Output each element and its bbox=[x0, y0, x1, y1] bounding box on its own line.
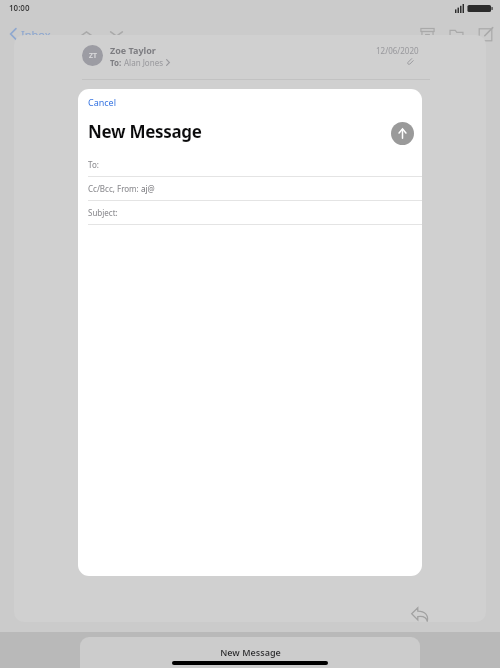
button[interactable]: Inbox bbox=[10, 16, 51, 52]
staticText: Cc/Bcc, From: bbox=[88, 183, 141, 194]
button[interactable]: Move to folder bbox=[438, 16, 474, 52]
staticText: To: bbox=[88, 159, 99, 170]
button[interactable]: Reply bbox=[402, 597, 436, 622]
button[interactable]: To: bbox=[110, 57, 170, 68]
staticText: 10:00 bbox=[9, 2, 30, 13]
staticText: ZT bbox=[89, 51, 97, 61]
staticText: New Message bbox=[220, 646, 281, 658]
button[interactable]: Cc/Bcc, From: bbox=[78, 177, 422, 201]
staticText: To: bbox=[110, 57, 124, 68]
staticText: Subject: bbox=[88, 207, 118, 218]
button[interactable]: To: bbox=[78, 153, 422, 177]
button[interactable]: Send bbox=[391, 122, 414, 145]
button[interactable]: Cancel bbox=[88, 96, 117, 108]
staticText: Alan Jones bbox=[124, 57, 163, 68]
button[interactable]: Next message bbox=[98, 16, 134, 52]
staticText: Cancel bbox=[88, 96, 117, 108]
button[interactable]: New Message bbox=[80, 637, 420, 668]
staticText: 12/06/2020 bbox=[376, 45, 419, 56]
staticText: New Message bbox=[88, 120, 202, 143]
staticText: aj@ bbox=[141, 183, 155, 194]
staticText: Zoe Taylor bbox=[110, 44, 156, 56]
button[interactable]: Previous message bbox=[68, 16, 104, 52]
button[interactable]: Archive bbox=[409, 16, 445, 52]
button[interactable]: Compose bbox=[467, 16, 500, 52]
staticText: Inbox bbox=[21, 27, 51, 42]
button[interactable]: Subject: bbox=[78, 201, 422, 225]
